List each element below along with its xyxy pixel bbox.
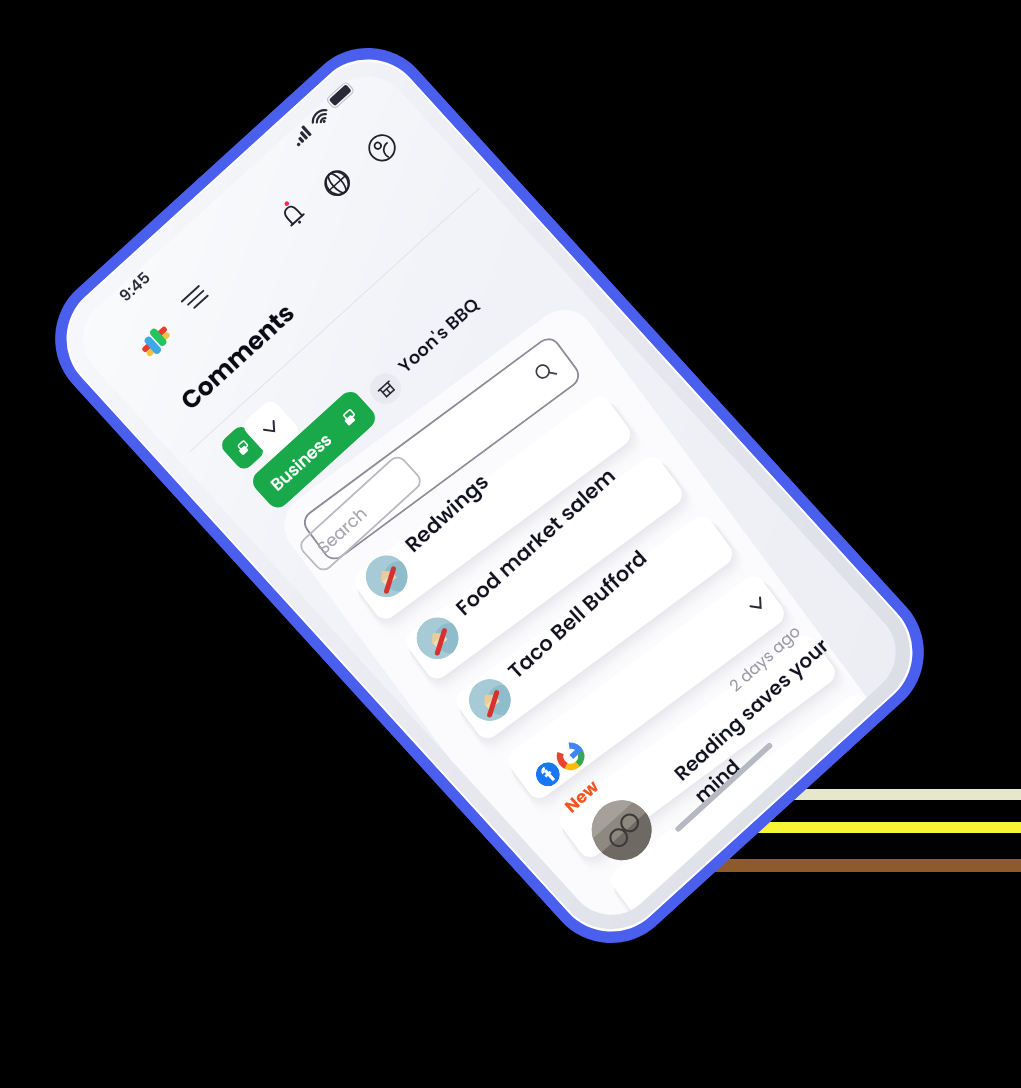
staticText: Taco Bell Bufford bbox=[501, 543, 653, 685]
button[interactable]: Search bbox=[294, 309, 589, 588]
staticText: Food market salem bbox=[449, 461, 622, 622]
staticText: Comments bbox=[173, 296, 302, 418]
button[interactable] bbox=[447, 488, 741, 767]
button[interactable]: Language bbox=[312, 158, 363, 209]
button[interactable]: Edit bbox=[218, 423, 267, 472]
staticText: New bbox=[559, 775, 604, 818]
staticText: 2 days ago bbox=[724, 620, 805, 696]
button[interactable]: Redwings bbox=[398, 467, 495, 559]
button[interactable]: Taco Bell Bufford bbox=[501, 543, 653, 685]
button[interactable]: Business bbox=[248, 387, 380, 512]
button[interactable] bbox=[499, 548, 793, 826]
staticText: Redwings bbox=[398, 467, 495, 559]
staticText: Search bbox=[312, 501, 372, 559]
button[interactable]: Store bbox=[364, 367, 407, 411]
button[interactable] bbox=[240, 397, 302, 460]
button[interactable] bbox=[397, 428, 691, 707]
staticText: Business bbox=[265, 428, 337, 496]
button[interactable]: Search bbox=[296, 452, 425, 575]
button[interactable]: Menu bbox=[172, 276, 217, 321]
button[interactable] bbox=[550, 607, 844, 886]
button[interactable] bbox=[602, 667, 866, 912]
button[interactable]: Notifications bbox=[268, 190, 319, 241]
staticText: Reading saves your mind bbox=[668, 629, 858, 809]
button[interactable]: Profile bbox=[357, 122, 407, 173]
staticText: Yoon's BBQ bbox=[392, 291, 485, 378]
staticText: 9:45 bbox=[115, 267, 156, 306]
button[interactable] bbox=[345, 369, 640, 647]
button[interactable]: Food market salem bbox=[449, 461, 622, 622]
